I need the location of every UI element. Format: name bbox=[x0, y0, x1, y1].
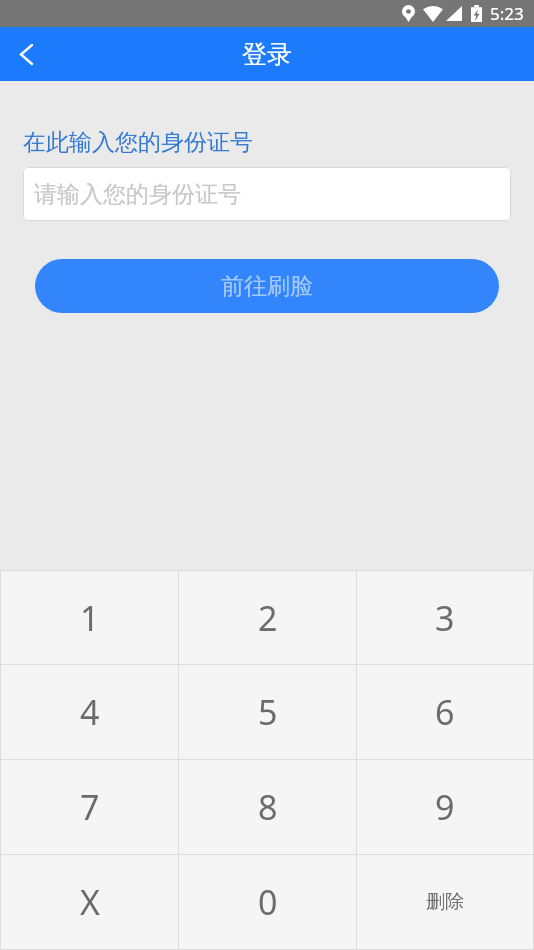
staticText: 8 bbox=[258, 784, 278, 830]
button[interactable]: X bbox=[1, 855, 178, 949]
staticText: 前往刷脸 bbox=[221, 272, 313, 301]
button[interactable]: 3 bbox=[357, 571, 533, 664]
button[interactable]: 1 bbox=[1, 571, 178, 664]
staticText: 登录 bbox=[242, 39, 292, 70]
staticText: 5 bbox=[258, 689, 278, 735]
button[interactable]: 前往刷脸 bbox=[35, 259, 499, 313]
staticText: 3 bbox=[435, 595, 455, 641]
button[interactable]: 8 bbox=[179, 760, 356, 854]
button[interactable]: 请输入您的身份证号 bbox=[23, 167, 511, 221]
button[interactable]: 5 bbox=[179, 665, 356, 759]
staticText: 2 bbox=[258, 595, 278, 641]
staticText: 5:23 bbox=[490, 2, 524, 25]
staticText: X bbox=[80, 879, 100, 925]
staticText: 4 bbox=[80, 689, 100, 735]
staticText: 9 bbox=[435, 784, 455, 830]
button[interactable]: Back bbox=[0, 27, 52, 81]
staticText: 7 bbox=[80, 784, 100, 830]
staticText: 1 bbox=[80, 595, 100, 641]
button[interactable]: 6 bbox=[357, 665, 533, 759]
button[interactable]: 7 bbox=[1, 760, 178, 854]
button[interactable]: 删除 bbox=[357, 855, 533, 949]
staticText: 0 bbox=[258, 879, 278, 925]
staticText: 在此输入您的身份证号 bbox=[23, 128, 253, 157]
staticText: 请输入您的身份证号 bbox=[34, 180, 241, 209]
staticText: 删除 bbox=[426, 890, 464, 914]
button[interactable]: 0 bbox=[179, 855, 356, 949]
button[interactable]: 4 bbox=[1, 665, 178, 759]
button[interactable]: 9 bbox=[357, 760, 533, 854]
button[interactable]: 2 bbox=[179, 571, 356, 664]
staticText: 6 bbox=[435, 689, 455, 735]
